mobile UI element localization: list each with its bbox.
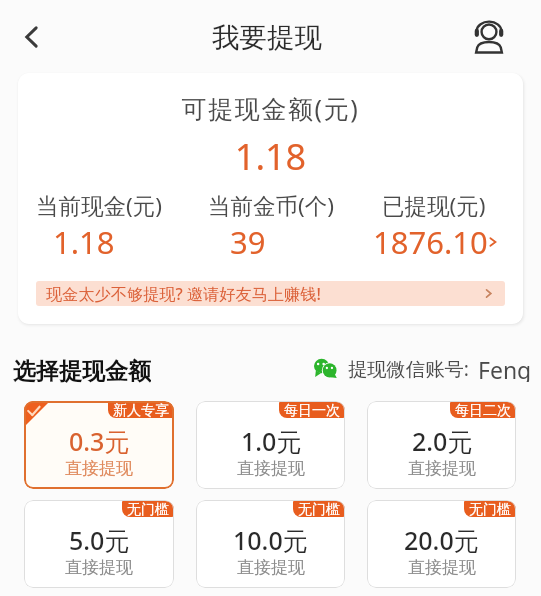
staticText: 无门槛	[469, 501, 511, 517]
staticText: 39	[230, 221, 266, 263]
button[interactable]: 无门槛	[24, 500, 174, 588]
staticText: 20.0元	[404, 523, 479, 557]
button[interactable]: 无门槛	[196, 500, 345, 588]
staticText: 10.0元	[233, 523, 308, 557]
staticText: 1876.10	[373, 221, 488, 263]
staticText: 直接提现	[408, 458, 476, 479]
staticText: 我要提现	[212, 21, 322, 56]
button[interactable]: 每日一次	[196, 401, 345, 489]
staticText: 每日一次	[284, 402, 340, 418]
staticText: 5.0元	[69, 523, 130, 557]
staticText: 无门槛	[127, 501, 169, 517]
staticText: 当前金币(个)	[208, 190, 335, 221]
button[interactable]: Back	[10, 15, 54, 59]
button[interactable]: Customer service	[467, 15, 511, 59]
staticText: 直接提现	[237, 458, 305, 479]
button[interactable]: 无门槛	[367, 500, 516, 588]
staticText: 已提现(元)	[382, 190, 486, 221]
staticText: 当前现金(元)	[36, 190, 163, 221]
staticText: 0.3元	[69, 424, 130, 458]
button[interactable]: 每日二次	[367, 401, 516, 489]
staticText: 1.18	[18, 132, 523, 181]
staticText: Feng	[478, 354, 532, 382]
staticText: 可提现金额(元)	[18, 91, 523, 125]
button[interactable]: 现金太少不够提现? 邀请好友马上赚钱!	[36, 281, 505, 306]
staticText: 1.0元	[241, 424, 302, 458]
staticText: 现金太少不够提现? 邀请好友马上赚钱!	[46, 283, 321, 305]
staticText: 1.18	[53, 221, 115, 263]
button[interactable]: 提现微信账号:	[314, 354, 532, 382]
button[interactable]: 新人专享	[24, 401, 174, 489]
staticText: 新人专享	[113, 402, 169, 418]
staticText: 提现微信账号:	[348, 355, 469, 381]
staticText: 直接提现	[408, 557, 476, 578]
staticText: 2.0元	[412, 424, 473, 458]
staticText: 每日二次	[455, 402, 511, 418]
staticText: 直接提现	[237, 557, 305, 578]
staticText: 选择提现金额	[13, 357, 151, 385]
staticText: 直接提现	[65, 458, 133, 479]
staticText: 直接提现	[65, 557, 133, 578]
staticText: 无门槛	[298, 501, 340, 517]
